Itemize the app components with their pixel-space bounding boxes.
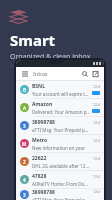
staticText: Inbox <box>33 70 48 77</box>
staticText: 47828 <box>32 173 47 180</box>
staticText: New information on your <box>32 145 86 151</box>
staticText: 12:4 <box>93 138 100 143</box>
staticText: 12:4 <box>93 84 100 89</box>
staticText: 22622 <box>32 155 47 162</box>
button[interactable]: 3 <box>16 189 104 200</box>
button[interactable]: B <box>16 81 104 98</box>
staticText: 2 <box>23 159 26 165</box>
button[interactable]: Open external <box>91 69 100 78</box>
staticText: 38998788 <box>32 119 55 126</box>
button[interactable]: Search <box>80 69 89 78</box>
button[interactable]: Menu <box>20 69 29 78</box>
staticText: 12:4 <box>93 189 100 194</box>
staticText: aTTI Msg: Your Prepaid payme... <box>32 197 90 200</box>
staticText: Metro <box>32 137 48 144</box>
staticText: 12:4 <box>93 174 100 179</box>
staticText: 12:4 <box>93 120 100 125</box>
staticText: AIRtelTV Home: From Door w... <box>32 181 90 187</box>
staticText: BSNL <box>32 83 45 90</box>
button[interactable]: A <box>16 99 104 116</box>
staticText: Delivered: Your Amazon package... <box>32 109 90 115</box>
button[interactable]: M <box>16 135 104 152</box>
staticText: 4 <box>23 177 26 183</box>
staticText: Smart <box>10 30 56 50</box>
staticText: Amazon <box>32 101 53 108</box>
button[interactable]: 4 <box>16 171 104 188</box>
staticText: Organized & clean inbox <box>10 52 91 62</box>
staticText: 38998788 <box>32 189 55 196</box>
staticText: 12:4 <box>93 102 100 107</box>
staticText: 3 <box>23 123 26 129</box>
staticText: aTTI Msg: Your Prepaid payme... <box>32 127 90 133</box>
button[interactable]: 3 <box>16 117 104 134</box>
staticText: DHL 2G available after 123 d... <box>32 163 90 169</box>
staticText: 12:4 <box>93 156 100 161</box>
staticText: A <box>23 105 26 111</box>
staticText: Your account will expire tonight... <box>32 91 90 97</box>
staticText: 3 <box>23 192 26 198</box>
button[interactable]: 2 <box>16 153 104 170</box>
staticText: B <box>23 87 26 93</box>
staticText: M <box>22 141 27 147</box>
